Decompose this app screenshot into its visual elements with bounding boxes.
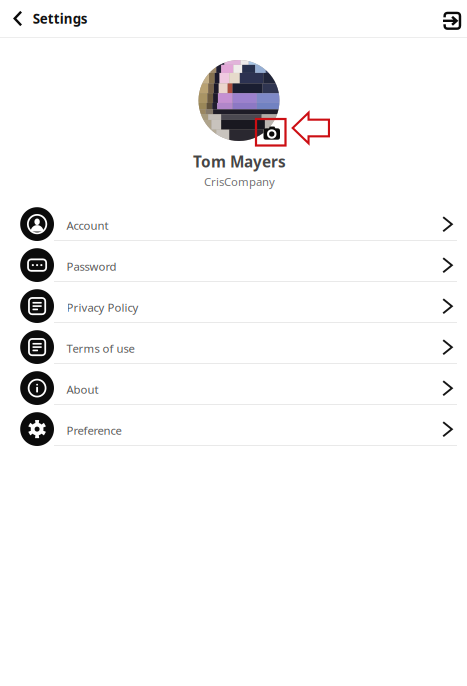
button[interactable]: Terms of use	[0, 323, 467, 364]
staticText: Terms of use	[66, 341, 134, 356]
button[interactable]: Log out	[433, 0, 467, 37]
staticText: Preference	[66, 423, 121, 438]
button[interactable]: Preference	[0, 405, 467, 446]
button[interactable]: About	[0, 364, 467, 405]
staticText: Privacy Policy	[66, 300, 138, 315]
staticText: CrisCompany	[204, 174, 275, 189]
staticText: Settings	[33, 9, 88, 28]
button[interactable]: Privacy Policy	[0, 282, 467, 323]
staticText: About	[66, 382, 98, 397]
staticText: Tom Mayers	[193, 151, 286, 172]
staticText: Password	[66, 259, 116, 274]
button[interactable]: Password	[0, 241, 467, 282]
staticText: Account	[66, 218, 108, 233]
button[interactable]: Settings	[0, 0, 98, 37]
button[interactable]: Account	[0, 200, 467, 241]
